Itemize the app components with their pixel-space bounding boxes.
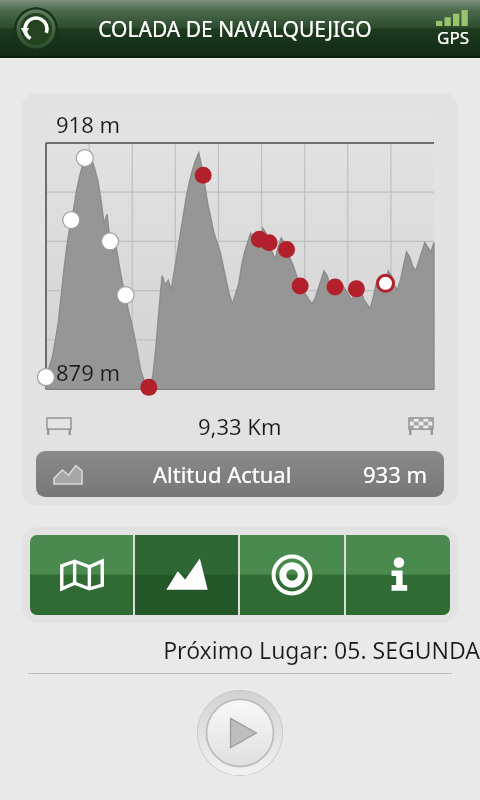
button[interactable]: Back <box>14 7 58 51</box>
staticText: GPS <box>437 26 469 49</box>
button[interactable]: GPS status <box>436 10 470 49</box>
staticText: 933 m <box>363 459 428 489</box>
button[interactable]: Compass <box>240 535 344 615</box>
button[interactable]: Altitud Actual <box>36 451 444 497</box>
staticText: 879 m <box>56 357 121 387</box>
staticText: Próximo Lugar: 05. SEGUNDA <box>163 634 480 665</box>
button[interactable]: Start <box>197 690 283 776</box>
staticText: 918 m <box>56 109 121 139</box>
staticText: 9,33 Km <box>198 411 282 441</box>
button[interactable]: Map <box>30 535 133 615</box>
staticText: COLADA DE NAVALQUEJIGO <box>98 15 372 44</box>
staticText: Altitud Actual <box>153 459 292 489</box>
button[interactable]: Elevation chart <box>135 535 238 615</box>
button[interactable]: Information <box>346 535 450 615</box>
